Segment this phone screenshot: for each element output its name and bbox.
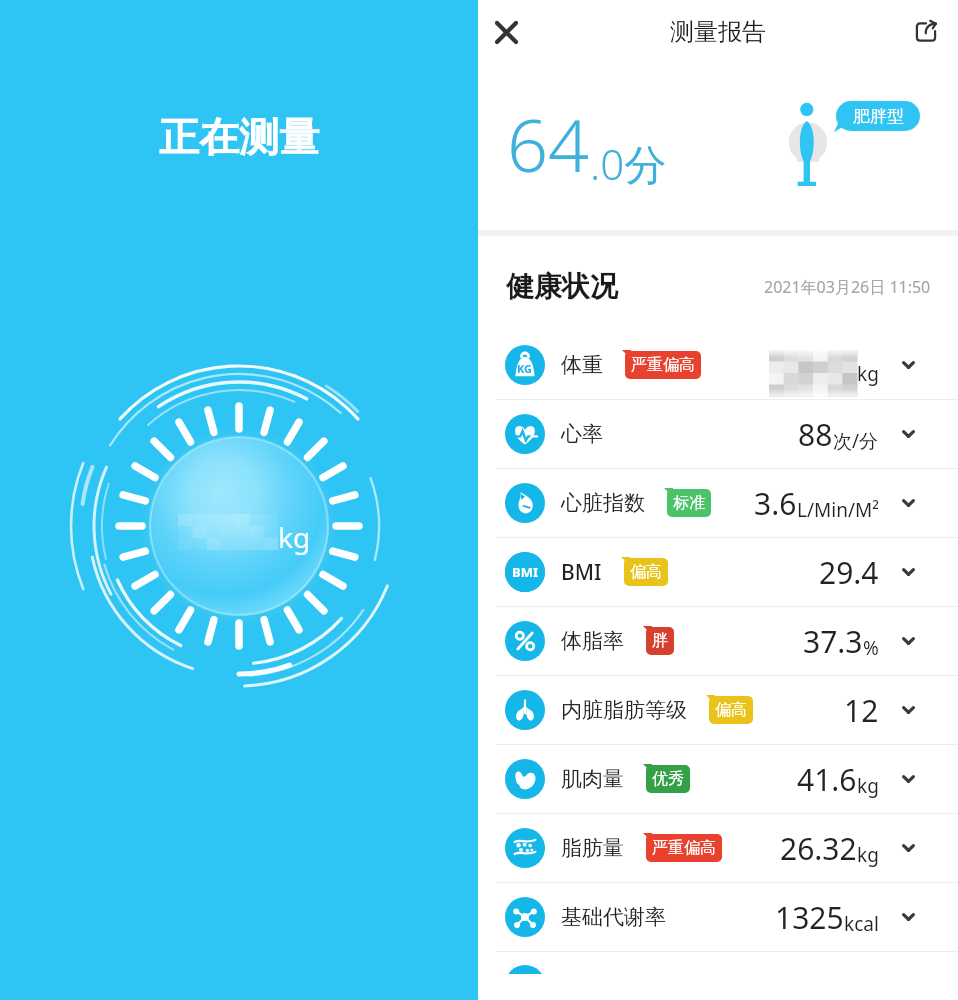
staticText: L/Min/M² <box>797 497 879 523</box>
staticText: 心率 <box>561 421 603 447</box>
staticText: 严重偏高 <box>652 838 716 858</box>
staticText: 64 <box>507 95 590 193</box>
staticText: 3.6 <box>754 483 797 524</box>
button[interactable]: 内脏脂肪等级 <box>478 676 958 745</box>
button[interactable]: KG <box>478 331 958 400</box>
staticText: BMI <box>512 563 538 581</box>
staticText: 内脏脂肪等级 <box>561 697 687 723</box>
staticText: 正在测量 <box>159 112 319 162</box>
staticText: 测量报告 <box>670 17 766 47</box>
staticText: kcal <box>844 911 879 937</box>
staticText: 体脂率 <box>561 628 624 654</box>
button[interactable]: Share <box>902 8 950 56</box>
staticText: 脂肪量 <box>561 835 624 861</box>
staticText: 肥胖型 <box>853 106 904 127</box>
staticText: 88 <box>798 414 833 455</box>
staticText: 体重 <box>561 352 603 378</box>
staticText: kg <box>857 773 879 799</box>
button[interactable]: 基础代谢率 <box>478 883 958 952</box>
staticText: 29.4 <box>819 552 879 593</box>
staticText: 次/分 <box>833 428 879 454</box>
staticText: 37.3 <box>803 621 863 662</box>
staticText: 严重偏高 <box>631 355 695 375</box>
staticText: 胖 <box>652 631 668 651</box>
staticText: BMI <box>561 558 602 587</box>
staticText: 肌肉量 <box>561 766 624 792</box>
button[interactable]: BMI <box>478 538 958 607</box>
staticText: 12 <box>844 690 879 731</box>
staticText: 偏高 <box>630 562 662 582</box>
staticText: 41.6 <box>797 759 857 800</box>
staticText: 偏高 <box>715 700 747 720</box>
staticText: kg <box>857 361 879 387</box>
button[interactable]: 心脏指数 <box>478 469 958 538</box>
staticText: 26.32 <box>780 828 857 869</box>
button[interactable]: 脂肪量 <box>478 814 958 883</box>
staticText: 标准 <box>673 493 705 513</box>
staticText: KG <box>517 361 533 376</box>
staticText: 健康状况 <box>506 269 618 304</box>
staticText: .0分 <box>590 135 667 192</box>
staticText: 1325 <box>775 897 844 938</box>
staticText: 2021年03月26日 11:50 <box>764 276 931 298</box>
button[interactable]: 心率 <box>478 400 958 469</box>
staticText: kg <box>278 518 311 556</box>
button[interactable]: Close <box>482 8 530 56</box>
button[interactable]: 肌肉量 <box>478 745 958 814</box>
staticText: kg <box>857 842 879 868</box>
staticText: 基础代谢率 <box>561 904 666 930</box>
staticText: % <box>863 635 879 661</box>
button[interactable]: 体脂率 <box>478 607 958 676</box>
staticText: 心脏指数 <box>561 490 645 516</box>
staticText: 优秀 <box>652 769 684 789</box>
